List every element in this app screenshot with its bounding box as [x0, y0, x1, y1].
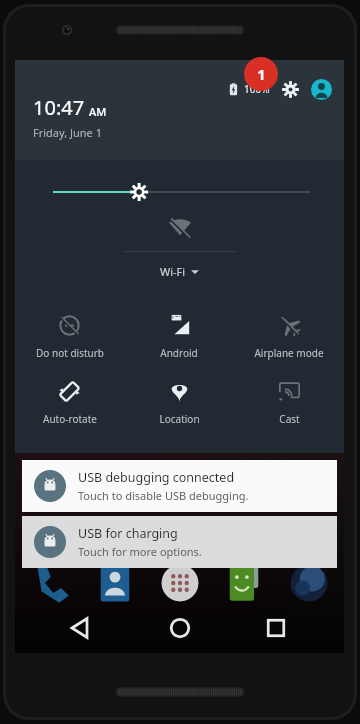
staticText: Android: [160, 346, 198, 360]
staticText: Auto-rotate: [43, 412, 97, 426]
staticText: USB debugging connected: [78, 469, 235, 486]
button[interactable]: Phone: [29, 562, 71, 604]
button[interactable]: Contacts: [94, 562, 136, 604]
button[interactable]: Back: [55, 603, 111, 653]
button[interactable]: Wi-Fi: [156, 260, 203, 283]
button[interactable]: Messages: [223, 562, 265, 604]
button[interactable]: Recents: [248, 603, 304, 653]
staticText: Touch to disable USB debugging.: [78, 488, 249, 503]
staticText: Friday, June 1: [33, 125, 102, 140]
button[interactable]: Auto-rotate: [15, 376, 124, 430]
button[interactable]: USB for charging: [22, 516, 337, 568]
button[interactable]: Airplane mode: [234, 310, 344, 364]
button[interactable]: Home: [152, 603, 208, 653]
button[interactable]: User profile: [310, 78, 332, 100]
button[interactable]: Browser: [288, 562, 330, 604]
staticText: Touch for more options.: [78, 544, 202, 559]
staticText: 1: [257, 64, 266, 84]
staticText: 100%: [244, 82, 270, 96]
button[interactable]: Do not disturb: [15, 310, 124, 364]
button[interactable]: USB debugging connected: [22, 460, 337, 512]
button[interactable]: [15, 170, 344, 214]
button[interactable]: Cast: [234, 376, 344, 430]
button[interactable]: Settings: [280, 79, 300, 99]
button[interactable]: Apps: [159, 562, 201, 604]
staticText: AM: [89, 104, 107, 119]
button[interactable]: Android: [124, 310, 234, 364]
staticText: Location: [159, 412, 200, 426]
staticText: Airplane mode: [254, 346, 324, 360]
staticText: Do not disturb: [36, 346, 104, 360]
staticText: Wi-Fi: [160, 264, 186, 279]
button[interactable]: Location: [124, 376, 234, 430]
staticText: USB for charging: [78, 525, 178, 542]
staticText: 10:47: [33, 94, 85, 121]
staticText: Cast: [279, 412, 300, 426]
